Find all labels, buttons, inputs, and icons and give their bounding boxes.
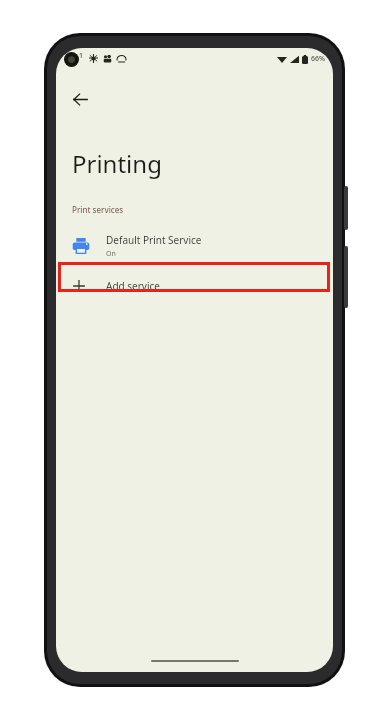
button[interactable]: Back [65,84,95,114]
staticText: 1 [79,51,84,61]
staticText: On [106,249,116,259]
button[interactable]: Default Print Service [56,227,333,265]
staticText: Print services [72,204,124,215]
staticText: Default Print Service [106,233,202,247]
staticText: Add service [106,279,160,293]
staticText: Printing [72,147,162,180]
button[interactable]: Add service [56,271,333,301]
staticText: 66% [311,54,325,64]
